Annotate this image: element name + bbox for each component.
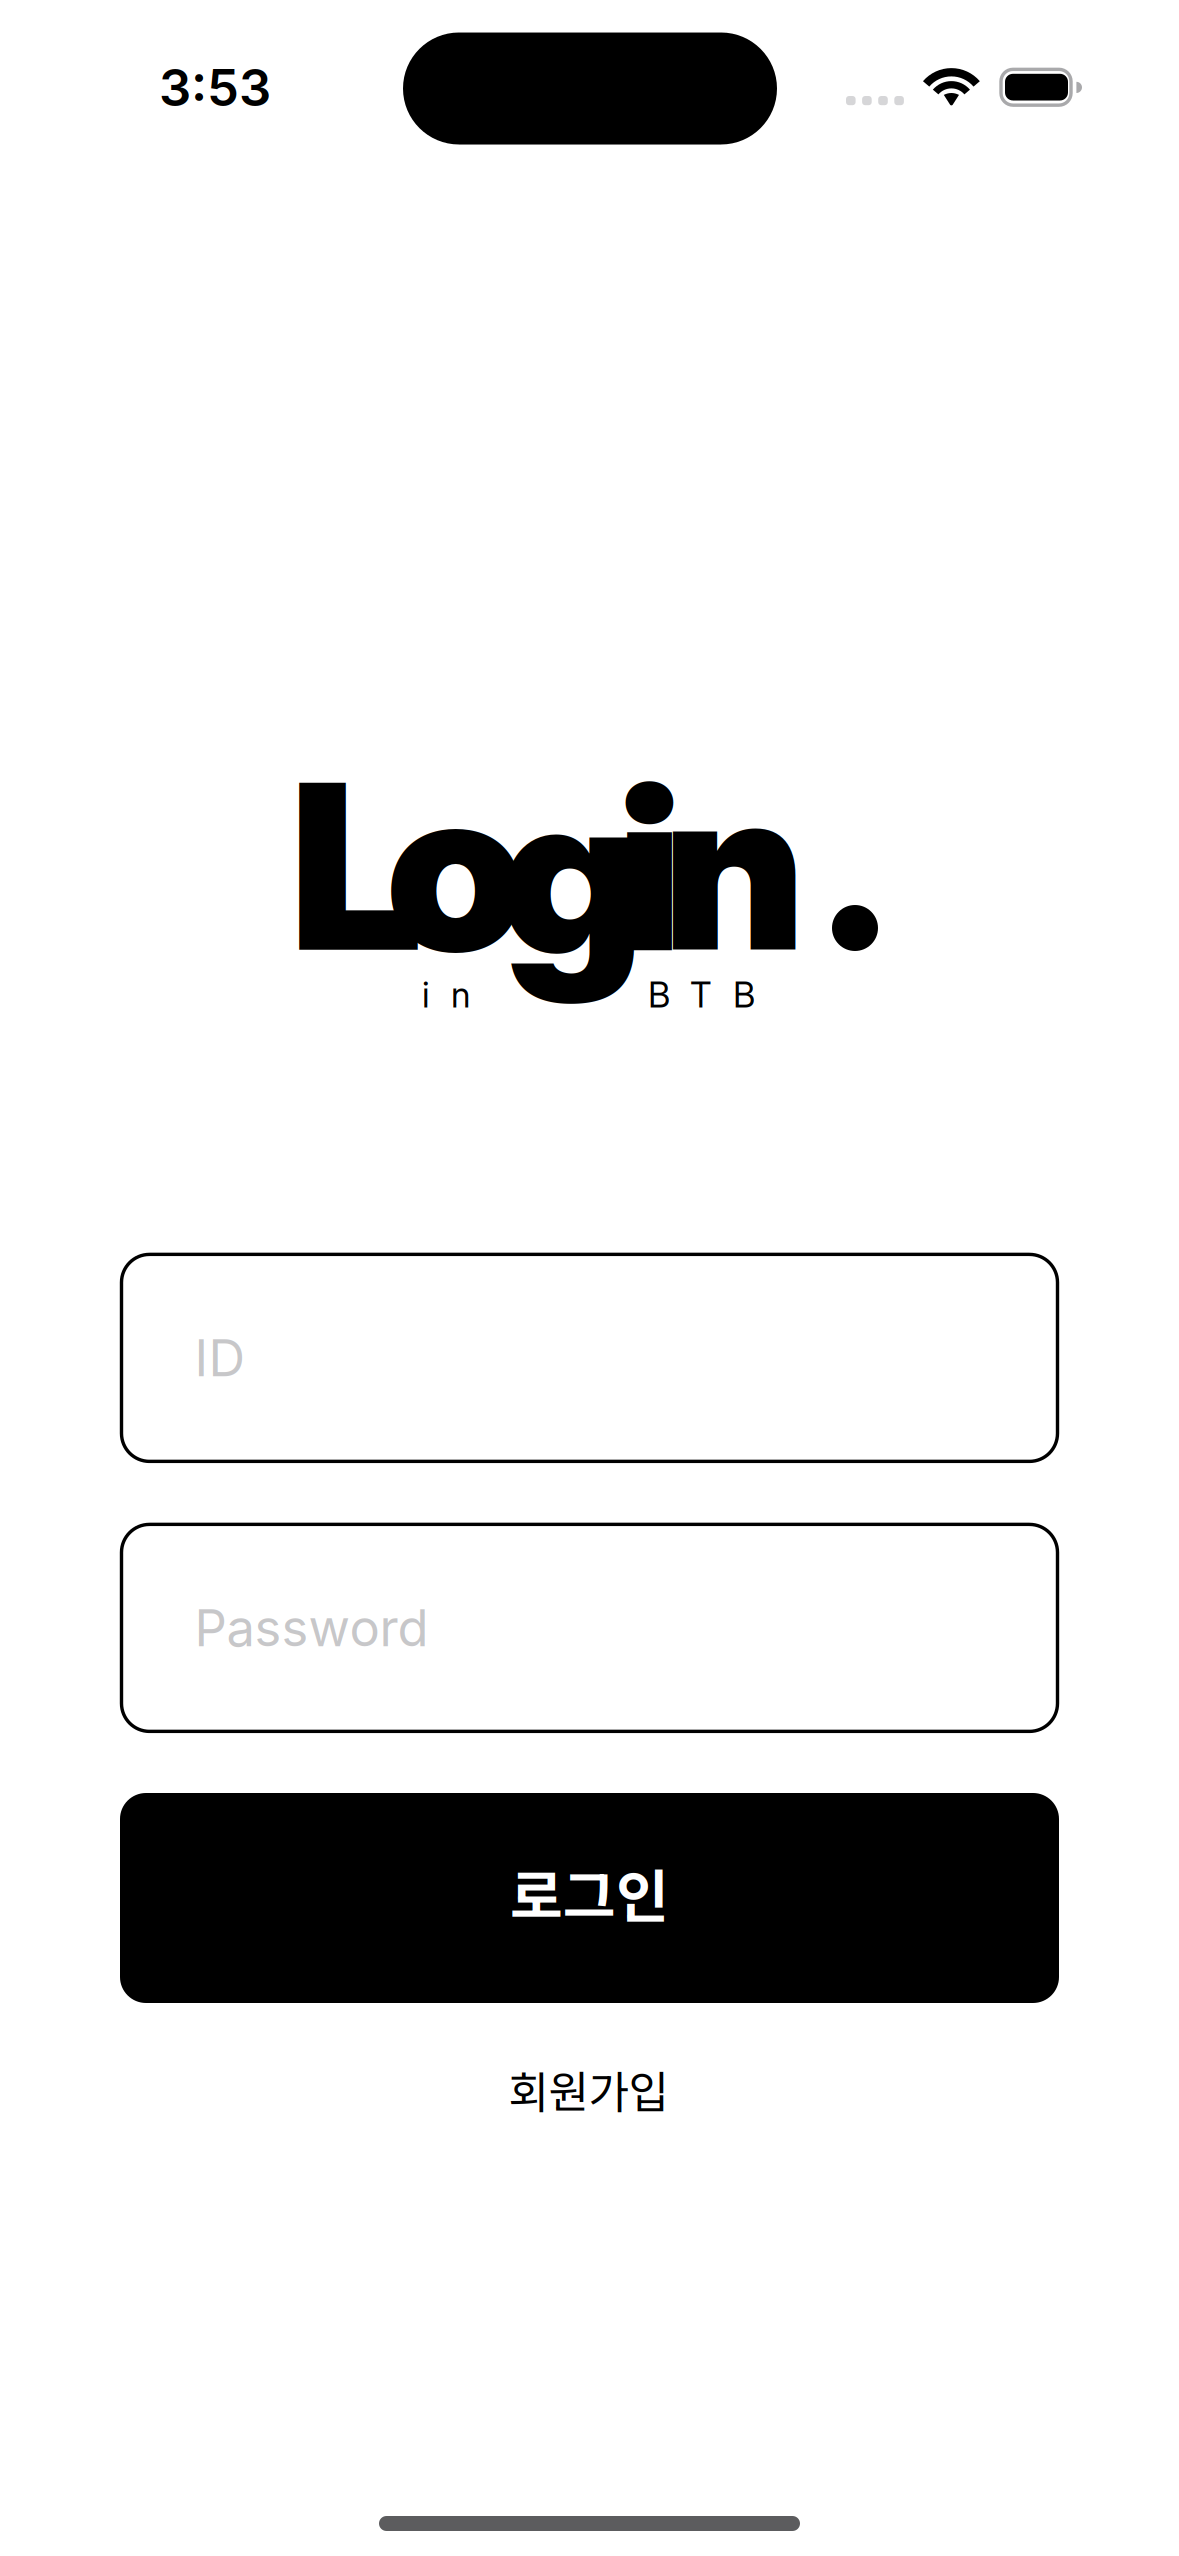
staticText: n bbox=[663, 727, 805, 1005]
staticText: i bbox=[617, 728, 681, 1005]
staticText: L bbox=[290, 727, 422, 1005]
button[interactable]: Password bbox=[121, 1524, 1057, 1731]
staticText: B bbox=[733, 974, 755, 1016]
button[interactable]: 로그인 bbox=[120, 1793, 1059, 2003]
staticText: B bbox=[648, 974, 670, 1016]
staticText: 회원가입 bbox=[508, 2057, 668, 2121]
staticText: ID bbox=[194, 1327, 245, 1388]
button[interactable]: 회원가입 bbox=[458, 2047, 718, 2131]
staticText: Password bbox=[194, 1597, 428, 1658]
image: Login in BTB bbox=[300, 779, 878, 1009]
staticText: i bbox=[422, 974, 430, 1016]
staticText: o bbox=[386, 728, 525, 1005]
staticText: 3:53 bbox=[159, 57, 271, 118]
staticText: n bbox=[451, 974, 470, 1016]
staticText: 로그인 bbox=[510, 1851, 669, 1934]
staticText: g bbox=[500, 733, 643, 1011]
button[interactable]: ID bbox=[121, 1254, 1057, 1461]
staticText: T bbox=[690, 974, 712, 1016]
